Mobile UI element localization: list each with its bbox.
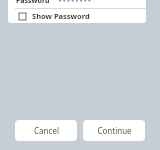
button[interactable]: Show Password xyxy=(8,9,146,23)
staticText: Password xyxy=(16,0,50,6)
button[interactable]: Password xyxy=(8,0,146,6)
button[interactable]: Cancel xyxy=(15,120,77,141)
staticText: Show Password xyxy=(32,11,90,21)
staticText: Cancel xyxy=(34,125,59,136)
staticText: Continue xyxy=(97,125,132,136)
button[interactable]: Continue xyxy=(83,120,145,141)
